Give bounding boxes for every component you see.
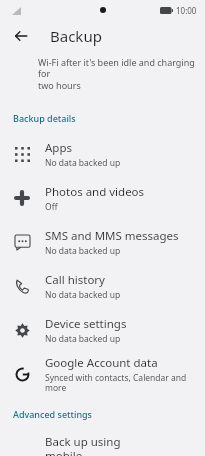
staticText: 10:00 (176, 5, 197, 16)
staticText: Device settings (45, 316, 127, 332)
staticText: Google Account data (45, 355, 158, 371)
staticText: No data backed up (45, 245, 121, 257)
staticText: SMS and MMS messages (45, 228, 179, 244)
staticText: Photos and videos (45, 184, 145, 200)
staticText: Advanced settings (13, 408, 92, 420)
staticText: Apps (45, 140, 73, 156)
button[interactable]: Google Account data (0, 352, 205, 396)
staticText: Off (45, 201, 58, 213)
button[interactable]: Call history (0, 264, 205, 308)
staticText: No data backed up (45, 157, 121, 169)
button[interactable]: Apps (0, 132, 205, 176)
staticText: No data backed up (45, 333, 121, 345)
staticText: Call history (45, 272, 105, 288)
staticText: Back up using mobile or metered Wi-Fi da… (45, 434, 159, 456)
button[interactable]: SMS and MMS messages (0, 220, 205, 264)
staticText: Backup details (13, 112, 76, 124)
staticText: No data backed up (45, 289, 121, 301)
button[interactable]: Photos and videos (0, 176, 205, 220)
button[interactable]: Device settings (0, 308, 205, 352)
staticText: Synced with contacts, Calendar and more (45, 372, 195, 393)
button[interactable]: Back up using mobile or metered Wi-Fi da… (0, 428, 205, 456)
staticText: Wi-Fi after it's been idle and charging … (38, 56, 195, 92)
staticText: Backup (50, 26, 102, 46)
button[interactable]: Back (6, 21, 36, 51)
